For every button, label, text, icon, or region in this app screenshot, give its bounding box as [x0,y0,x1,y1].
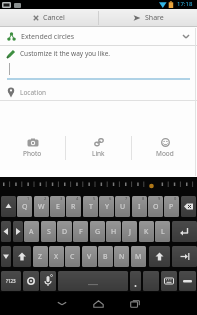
staticText: K [144,227,149,237]
staticText: D [62,227,68,237]
button[interactable]: N [114,246,129,267]
button[interactable]: O [148,196,163,217]
button[interactable]: Cancel [0,9,98,27]
staticText: 2 [44,196,47,201]
staticText: Share [145,13,164,23]
button[interactable]: Q [17,196,32,217]
button[interactable]: B [98,246,113,267]
button[interactable] [13,246,31,267]
button[interactable]: L [155,221,170,242]
button[interactable] [130,271,141,291]
staticText: 8 [142,196,145,201]
staticText: 1 [27,196,30,201]
button[interactable] [85,292,112,315]
staticText: Z [38,252,43,262]
staticText: Mood [156,149,174,158]
button[interactable]: R [66,196,81,217]
button[interactable]: U [115,196,130,217]
staticText: I [138,202,141,212]
button[interactable]: X [49,246,64,267]
button[interactable] [161,271,177,291]
button[interactable] [172,246,197,267]
staticText: 7 [125,196,128,201]
button[interactable] [149,246,170,267]
button[interactable] [181,196,196,217]
staticText: 9 [158,196,161,201]
button[interactable]: Location [0,84,197,101]
staticText: 5 [93,196,96,201]
button[interactable]: Z [33,246,48,267]
staticText: Photo [23,149,42,158]
button[interactable]: E [50,196,65,217]
staticText: O [153,202,159,212]
button[interactable]: Customize it the way you like. [0,46,197,84]
staticText: A [29,227,34,237]
button[interactable]: Share [99,9,197,27]
staticText: 0 [174,196,177,201]
button[interactable]: W [34,196,49,217]
button[interactable]: Extended circles [0,27,197,46]
staticText: 3 [60,196,63,201]
staticText: Cancel [43,13,65,23]
button[interactable] [172,221,197,242]
staticText: M [135,252,142,262]
staticText: V [87,252,92,262]
button[interactable]: H [106,221,121,242]
staticText: J [129,227,131,237]
staticText: 4 [76,196,79,201]
staticText: U [120,202,126,212]
button[interactable]: S [41,221,56,242]
staticText: E [56,202,60,212]
button[interactable]: V [82,246,97,267]
button[interactable]: T [83,196,98,217]
button[interactable]: C [65,246,80,267]
staticText: G [95,227,101,237]
staticText: H [111,227,117,237]
staticText: Extended circles [21,32,75,42]
staticText: C [70,252,75,262]
staticText: Link [92,149,105,158]
button[interactable]: Link [66,133,131,163]
staticText: Q [22,202,28,212]
button[interactable] [40,271,56,291]
staticText: Customize it the way you like. [20,49,111,58]
staticText: Y [105,202,109,212]
button[interactable] [122,292,148,315]
staticText: P [169,202,174,212]
staticText: F [79,227,83,237]
button[interactable]: Photo [0,133,65,163]
button[interactable] [143,271,159,291]
button[interactable] [179,271,196,291]
staticText: R [71,202,76,212]
staticText: ?123 [6,278,16,284]
button[interactable] [1,246,11,267]
button[interactable]: I [132,196,147,217]
staticText: B [103,252,108,262]
button[interactable] [23,271,39,291]
button[interactable]: J [122,221,137,242]
button[interactable]: A [24,221,39,242]
button[interactable]: ?123 [1,271,21,291]
staticText: N [119,252,125,262]
staticText: 6 [109,196,112,201]
staticText: X [54,252,59,262]
button[interactable] [1,221,11,242]
button[interactable]: G [90,221,105,242]
button[interactable]: Mood [132,133,197,163]
button[interactable] [58,271,128,291]
button[interactable]: P [164,196,179,217]
staticText: L [161,227,165,237]
staticText: S [47,227,51,237]
button[interactable]: D [57,221,72,242]
button[interactable] [49,292,75,315]
staticText: W [38,202,45,212]
staticText: 17:18 [177,0,193,8]
staticText: Location [20,88,47,97]
button[interactable]: Y [99,196,114,217]
staticText: T [89,202,93,212]
button[interactable]: M [131,246,146,267]
button[interactable]: F [73,221,88,242]
button[interactable] [1,196,16,217]
button[interactable]: K [139,221,154,242]
button[interactable] [13,221,23,242]
